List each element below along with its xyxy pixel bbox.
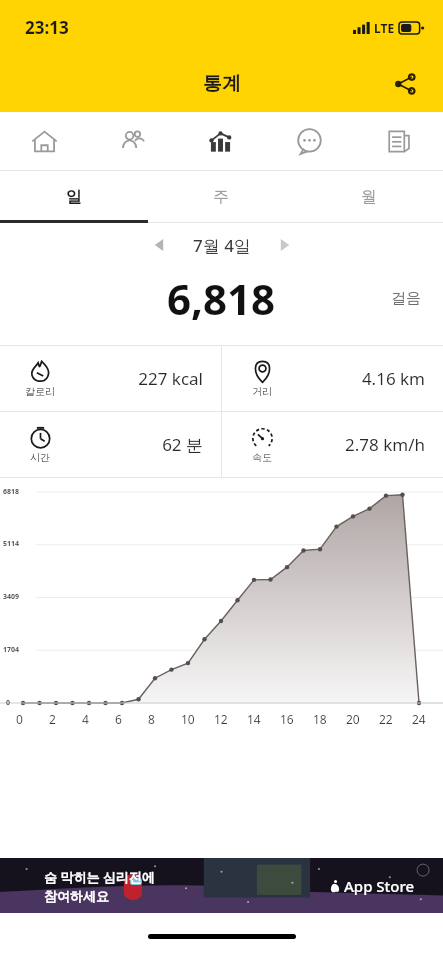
staticText: 12 <box>214 711 228 727</box>
staticText: 2.78 km/h <box>284 433 425 456</box>
button[interactable]: Statistics <box>176 112 265 170</box>
staticText: 걸음 <box>391 289 421 308</box>
button[interactable]: Previous day <box>141 227 177 263</box>
staticText: 4.16 km <box>284 367 425 390</box>
staticText: 주 <box>213 187 229 207</box>
button[interactable]: Next day <box>267 227 303 263</box>
staticText: 4 <box>82 711 89 727</box>
staticText: 6818 <box>3 487 20 497</box>
button[interactable]: 일 <box>0 171 147 223</box>
staticText: 3409 <box>3 592 20 602</box>
button[interactable]: News <box>354 112 443 170</box>
button[interactable]: 월 <box>295 171 443 223</box>
staticText: 시간 <box>30 451 50 464</box>
staticText: 일 <box>66 187 82 207</box>
staticText: 2 <box>49 711 56 727</box>
staticText: 0 <box>6 698 11 708</box>
staticText: 거리 <box>252 385 272 398</box>
button[interactable]: 칼로리 <box>0 346 221 411</box>
staticText: 속도 <box>252 451 272 464</box>
button[interactable]: Share <box>381 60 429 108</box>
staticText: 1704 <box>3 645 20 655</box>
staticText: 62 분 <box>62 433 203 456</box>
button[interactable]: Friends <box>88 112 176 170</box>
staticText: 참여하세요 <box>44 888 109 904</box>
staticText: 10 <box>181 711 195 727</box>
button[interactable]: 주 <box>147 171 295 223</box>
button[interactable]: 숨 막히는 심리전에 <box>0 858 443 913</box>
button[interactable]: Home <box>0 112 88 170</box>
button[interactable]: Chat <box>265 112 354 170</box>
staticText: 24 <box>412 711 426 727</box>
staticText: 7월 4일 <box>193 234 251 257</box>
staticText: 5114 <box>3 539 20 549</box>
staticText: 22 <box>379 711 393 727</box>
staticText: LTE <box>374 20 395 36</box>
staticText: App Store <box>344 876 415 896</box>
staticText: 23:13 <box>25 16 69 39</box>
staticText: 14 <box>247 711 261 727</box>
staticText: 8 <box>148 711 155 727</box>
staticText: 16 <box>280 711 294 727</box>
staticText: 숨 막히는 심리전에 <box>44 868 155 886</box>
staticText: 통계 <box>203 72 241 96</box>
staticText: 0 <box>16 711 23 727</box>
staticText: 18 <box>313 711 327 727</box>
staticText: 227 kcal <box>62 367 203 390</box>
staticText: 월 <box>361 187 377 207</box>
staticText: 20 <box>346 711 360 727</box>
staticText: 6,818 <box>167 270 276 327</box>
staticText: 6 <box>115 711 122 727</box>
button[interactable]: 거리 <box>222 346 443 411</box>
button[interactable]: 속도 <box>222 412 443 477</box>
button[interactable]: 시간 <box>0 412 221 477</box>
staticText: 칼로리 <box>25 385 55 398</box>
